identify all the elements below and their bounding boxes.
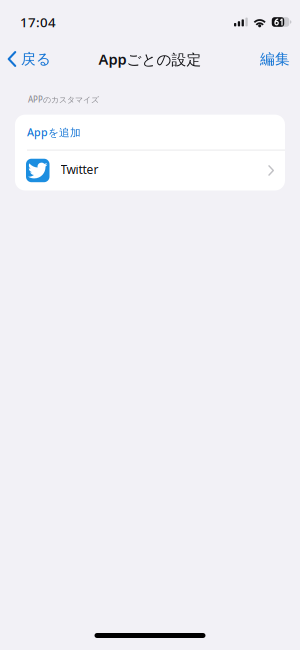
button[interactable]: 戻る	[0, 44, 59, 74]
staticText: 戻る	[21, 50, 51, 68]
staticText: APPのカスタマイズ	[28, 94, 99, 105]
staticText: Twitter	[60, 161, 98, 177]
staticText: 17:04	[20, 13, 56, 31]
button[interactable]: Appを追加	[15, 115, 285, 150]
staticText: Appごとの設定	[98, 49, 201, 69]
button[interactable]: Twitter	[15, 150, 285, 190]
staticText: Appを追加	[27, 125, 81, 139]
staticText: 編集	[260, 50, 290, 68]
button[interactable]: 編集	[249, 44, 300, 74]
